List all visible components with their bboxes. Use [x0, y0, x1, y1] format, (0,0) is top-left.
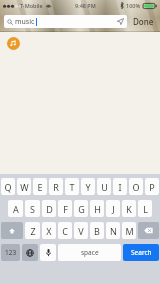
staticText: 100%	[126, 2, 141, 9]
staticText: N	[110, 225, 117, 237]
staticText: H	[94, 203, 101, 215]
button[interactable]: Change keyboard language	[22, 244, 38, 261]
staticText: P	[149, 181, 155, 193]
button[interactable]: J	[106, 200, 120, 217]
button[interactable]: S	[25, 200, 40, 217]
button[interactable]: Shift	[1, 222, 23, 239]
staticText: J	[112, 203, 115, 215]
staticText: F	[63, 203, 68, 215]
staticText: G	[78, 203, 85, 215]
button[interactable]: Backspace	[138, 222, 159, 239]
button[interactable]: K	[122, 200, 136, 217]
staticText: D	[46, 203, 53, 215]
button[interactable]: I	[113, 178, 127, 195]
button[interactable]: F	[58, 200, 72, 217]
button[interactable]: music	[4, 15, 127, 28]
staticText: T	[69, 181, 75, 193]
staticText: music	[15, 17, 35, 27]
staticText: C	[62, 225, 68, 237]
staticText: A	[13, 203, 19, 215]
button[interactable]: Y	[81, 178, 95, 195]
button[interactable]: H	[90, 200, 104, 217]
button[interactable]: L	[138, 200, 152, 217]
button[interactable]: Voice input	[40, 244, 56, 261]
button[interactable]: Done	[131, 13, 156, 30]
staticText: Y	[85, 181, 91, 193]
button[interactable]: N	[106, 222, 120, 239]
staticText: space	[81, 248, 99, 257]
staticText: V	[78, 225, 84, 237]
staticText: 123	[5, 248, 17, 257]
button[interactable]: B	[90, 222, 104, 239]
staticText: R	[53, 181, 59, 193]
button[interactable]: Search	[123, 244, 159, 261]
staticText: E	[37, 181, 43, 193]
staticText: Done	[133, 16, 154, 27]
other: Music	[7, 37, 20, 50]
button[interactable]: Q	[1, 178, 15, 195]
staticText: M	[125, 225, 134, 237]
staticText: T-Mobile	[20, 2, 43, 9]
staticText: Search	[131, 248, 152, 257]
button[interactable]: M	[122, 222, 136, 239]
button[interactable]: C	[58, 222, 72, 239]
button[interactable]: T	[65, 178, 79, 195]
button[interactable]: R	[49, 178, 63, 195]
staticText: 9:48 PM	[75, 2, 96, 9]
button[interactable]: Z	[25, 222, 40, 239]
staticText: I	[118, 181, 122, 193]
button[interactable]: E	[33, 178, 47, 195]
staticText: Q	[4, 181, 12, 193]
button[interactable]: D	[42, 200, 56, 217]
button[interactable]: V	[74, 222, 88, 239]
staticText: U	[101, 181, 108, 193]
staticText: S	[30, 203, 35, 215]
button[interactable]: 123	[1, 244, 20, 261]
staticText: K	[126, 203, 132, 215]
staticText: Z	[30, 225, 36, 237]
other: Send	[117, 18, 124, 25]
button[interactable]: A	[8, 200, 23, 217]
button[interactable]: U	[97, 178, 111, 195]
button[interactable]: space	[58, 244, 121, 261]
staticText: O	[132, 181, 140, 193]
button[interactable]: X	[42, 222, 56, 239]
button[interactable]: P	[145, 178, 159, 195]
staticText: W	[20, 181, 29, 193]
button[interactable]: O	[129, 178, 143, 195]
staticText: X	[46, 225, 52, 237]
staticText: B	[94, 225, 100, 237]
button[interactable]: W	[17, 178, 31, 195]
button[interactable]: Music	[0, 32, 160, 54]
button[interactable]: G	[74, 200, 88, 217]
staticText: L	[143, 203, 148, 215]
